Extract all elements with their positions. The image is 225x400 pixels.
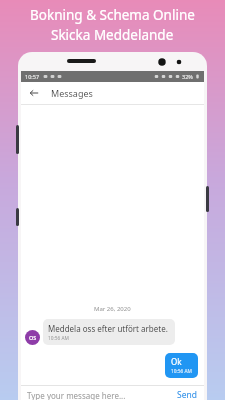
staticText: Ok [171,356,182,367]
staticText: 10:56 AM [48,335,69,342]
button[interactable]: Send [173,387,201,400]
button[interactable]: Type your message here... [21,386,204,400]
staticText: Skicka Meddelande [51,26,174,44]
staticText: Type your message here... [27,390,126,400]
staticText: 10:56 AM [171,368,192,375]
staticText: Mar 26, 2020 [94,305,131,313]
staticText: 32% [182,73,193,80]
staticText: Bokning & Schema Online [30,6,195,24]
staticText: Meddela oss efter utfört arbete. [48,323,168,334]
staticText: Messages [51,87,93,99]
button[interactable]: Back [26,85,42,101]
staticText: 10:57 [25,73,40,80]
staticText: OS [29,334,37,341]
staticText: Send [177,389,197,400]
button[interactable]: Ok [21,353,198,378]
button[interactable]: OS [25,319,198,345]
